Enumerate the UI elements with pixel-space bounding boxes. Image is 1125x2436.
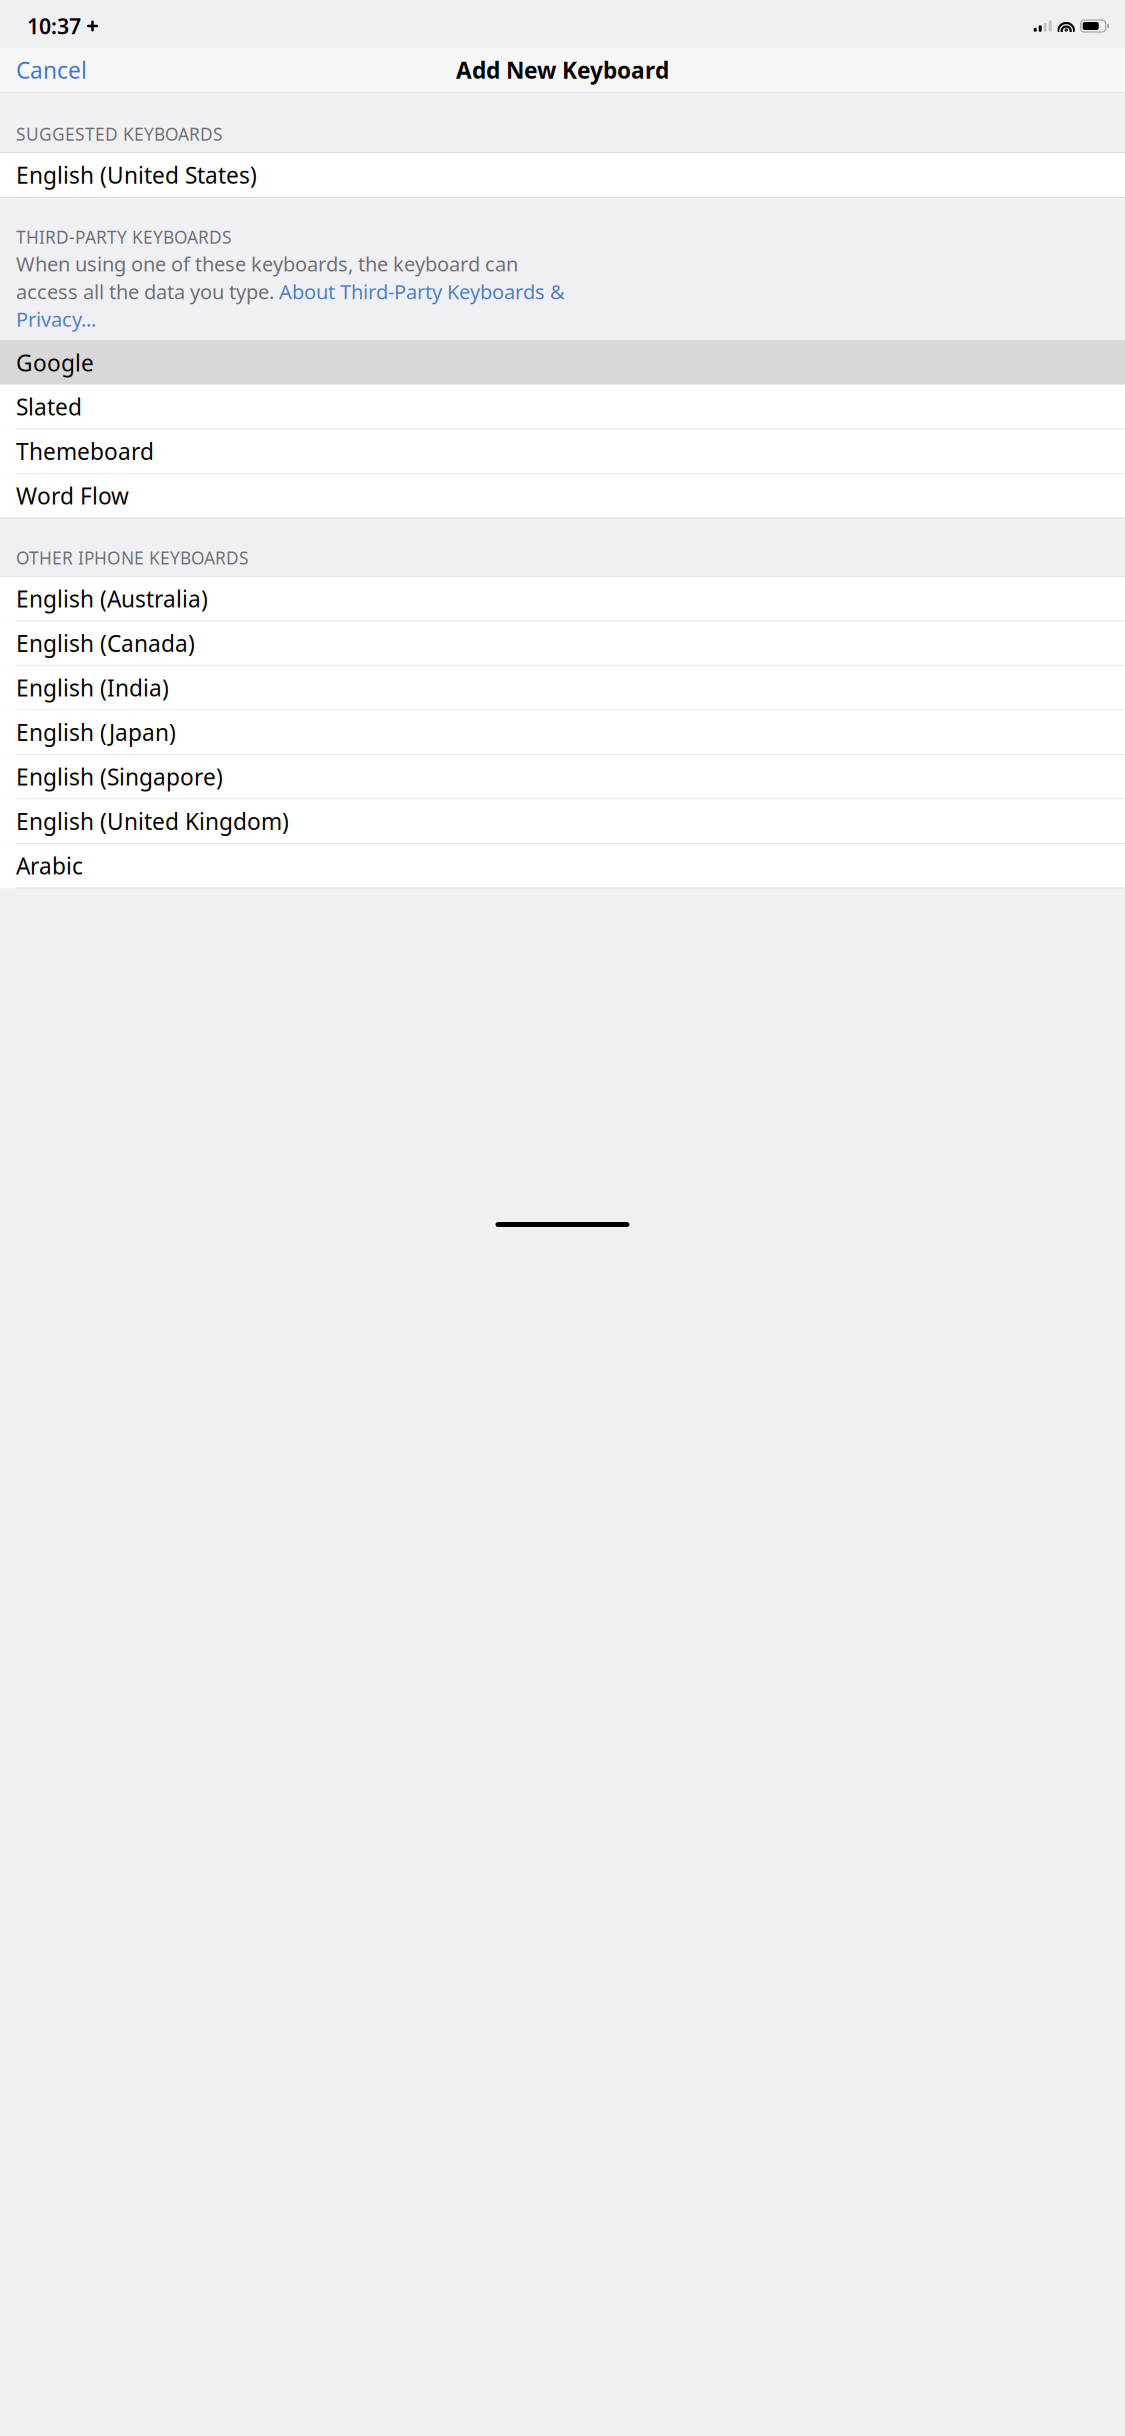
button[interactable]: Privacy... — [16, 306, 96, 332]
button[interactable]: English (Australia) — [0, 577, 1125, 621]
button[interactable]: Cancel — [0, 48, 103, 92]
button[interactable]: Google — [0, 341, 1125, 385]
staticText: Word Flow — [16, 481, 129, 511]
staticText: English (India) — [16, 673, 169, 703]
staticText: English (Singapore) — [16, 762, 223, 792]
staticText: Arabic — [16, 851, 83, 881]
button[interactable]: English (United States) — [0, 153, 1125, 197]
button[interactable]: Themeboard — [0, 429, 1125, 473]
button[interactable]: English (India) — [0, 666, 1125, 710]
button[interactable]: Word Flow — [0, 474, 1125, 518]
staticText: Add New Keyboard — [456, 55, 669, 85]
button[interactable]: English (Japan) — [0, 710, 1125, 754]
staticText: English (Japan) — [16, 717, 176, 747]
staticText: Google — [16, 348, 94, 378]
staticText: 10:37 — [27, 12, 81, 40]
button[interactable]: About Third-Party Keyboards & — [279, 278, 565, 305]
button[interactable]: English (United Kingdom) — [0, 799, 1125, 843]
staticText: access all the data you type. — [16, 278, 279, 305]
staticText: English (Australia) — [16, 584, 208, 614]
staticText: THIRD-PARTY KEYBOARDS — [16, 225, 232, 248]
staticText: English (Canada) — [16, 628, 195, 658]
staticText: OTHER IPHONE KEYBOARDS — [16, 546, 249, 569]
staticText: English (United States) — [16, 160, 257, 190]
staticText: Themeboard — [16, 436, 154, 466]
button[interactable]: Arabic — [0, 844, 1125, 888]
staticText: Slated — [16, 392, 82, 422]
button[interactable]: English (Canada) — [0, 621, 1125, 665]
staticText: When using one of these keyboards, the k… — [16, 250, 518, 277]
staticText: Cancel — [16, 55, 87, 85]
button[interactable]: English (Singapore) — [0, 755, 1125, 799]
staticText: English (United Kingdom) — [16, 806, 289, 836]
button[interactable]: Slated — [0, 385, 1125, 429]
staticText: SUGGESTED KEYBOARDS — [16, 122, 223, 145]
staticText: About Third-Party Keyboards & — [279, 278, 565, 305]
staticText: Privacy... — [16, 306, 96, 332]
